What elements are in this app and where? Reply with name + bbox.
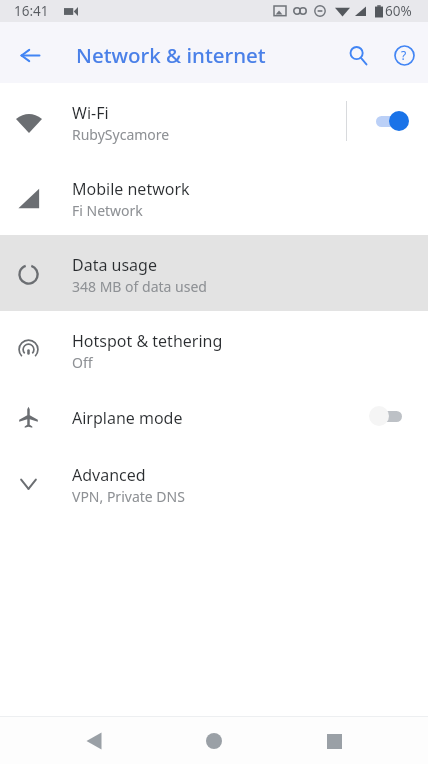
button[interactable]: Data usage xyxy=(0,235,428,311)
staticText: Mobile network xyxy=(72,178,190,200)
button[interactable]: Back xyxy=(74,721,114,761)
staticText: Wi-Fi xyxy=(72,102,109,124)
button[interactable]: Back xyxy=(10,35,50,75)
staticText: Hotspot & tethering xyxy=(72,330,223,352)
button[interactable]: Search xyxy=(338,33,382,77)
button[interactable]: Help xyxy=(382,33,426,77)
staticText: ? xyxy=(401,47,407,63)
staticText: 16:41 xyxy=(14,2,49,20)
button[interactable]: Home xyxy=(194,721,234,761)
staticText: 348 MB of data used xyxy=(72,277,207,296)
staticText: Fi Network xyxy=(72,201,143,220)
staticText: Network & internet xyxy=(76,41,266,69)
button[interactable]: Airplane mode xyxy=(0,387,428,445)
staticText: VPN, Private DNS xyxy=(72,487,185,506)
staticText: Airplane mode xyxy=(72,407,183,429)
staticText: 60% xyxy=(385,2,412,20)
staticText: Off xyxy=(72,353,93,372)
staticText: Data usage xyxy=(72,254,157,276)
button[interactable]: Hotspot & tethering xyxy=(0,311,428,387)
button[interactable]: Recents xyxy=(314,721,354,761)
button[interactable]: Wi-Fi xyxy=(0,83,428,159)
staticText: Advanced xyxy=(72,464,146,486)
button[interactable]: Mobile network xyxy=(0,159,428,235)
button[interactable]: Advanced xyxy=(0,445,428,521)
staticText: RubySycamore xyxy=(72,125,170,144)
